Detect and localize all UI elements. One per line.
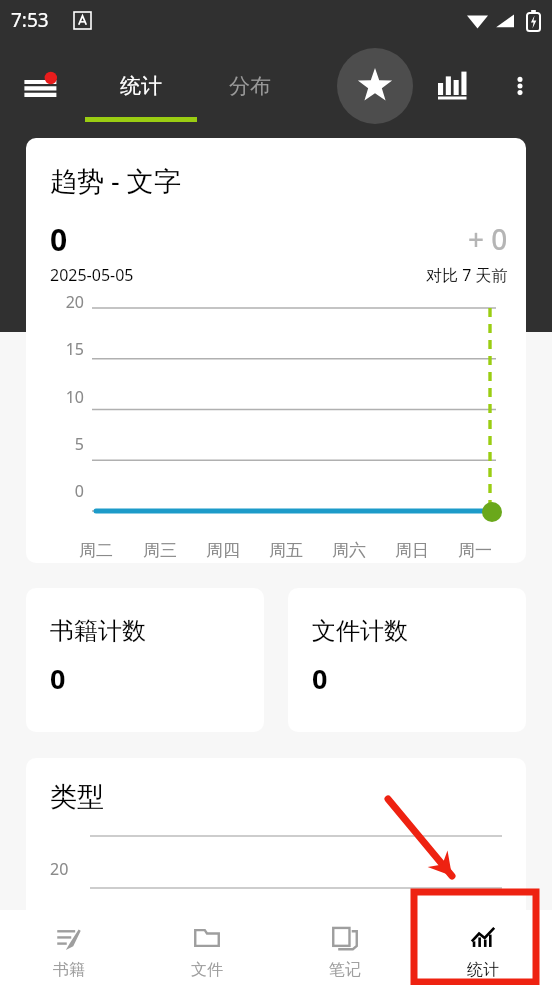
staticText: 文件计数	[312, 616, 408, 646]
staticText: 20	[50, 858, 69, 880]
staticText: 15	[50, 910, 69, 932]
staticText: 周三	[143, 540, 177, 561]
button[interactable]: 笔记	[276, 910, 414, 985]
staticText: 文件	[191, 960, 223, 980]
staticText: 对比 7 天前	[426, 264, 508, 286]
staticText: 15	[65, 338, 84, 360]
staticText: 周二	[79, 540, 113, 561]
button[interactable]: 文件	[138, 910, 276, 985]
button[interactable]: Favorite	[337, 48, 413, 124]
staticText: 10	[65, 386, 84, 408]
staticText: 分布	[229, 73, 271, 99]
button[interactable]: 文件计数	[288, 588, 526, 732]
staticText: 周日	[395, 540, 429, 561]
staticText: + 0	[468, 220, 508, 258]
button[interactable]: 统计	[96, 40, 186, 132]
staticText: 统计	[120, 73, 162, 99]
staticText: 7:53	[11, 7, 49, 33]
button[interactable]: Menu	[14, 58, 70, 114]
staticText: 类型	[50, 780, 104, 814]
button[interactable]: 书籍计数	[26, 588, 264, 732]
staticText: 书籍计数	[50, 616, 146, 646]
staticText: 0	[312, 660, 328, 697]
staticText: 书籍	[53, 960, 85, 980]
button[interactable]: Chart	[428, 61, 478, 111]
staticText: 笔记	[329, 960, 361, 980]
staticText: 2025-05-05	[50, 264, 134, 286]
staticText: 周四	[206, 540, 240, 561]
staticText: 统计	[467, 960, 499, 980]
button[interactable]: 书籍	[0, 910, 138, 985]
button[interactable]: 统计	[414, 910, 552, 985]
staticText: 周一	[458, 540, 492, 561]
button[interactable]: 分布	[200, 40, 300, 132]
button[interactable]: 类型	[26, 758, 526, 985]
staticText: 趋势 - 文字	[50, 162, 181, 199]
staticText: 0	[50, 660, 66, 697]
staticText: 5	[74, 433, 84, 455]
staticText: 0	[50, 219, 68, 260]
button[interactable]: 趋势 - 文字	[26, 138, 526, 563]
button[interactable]: More options	[496, 62, 544, 110]
staticText: 周五	[269, 540, 303, 561]
staticText: 20	[65, 291, 84, 313]
staticText: 周六	[332, 540, 366, 561]
staticText: 0	[74, 480, 84, 502]
